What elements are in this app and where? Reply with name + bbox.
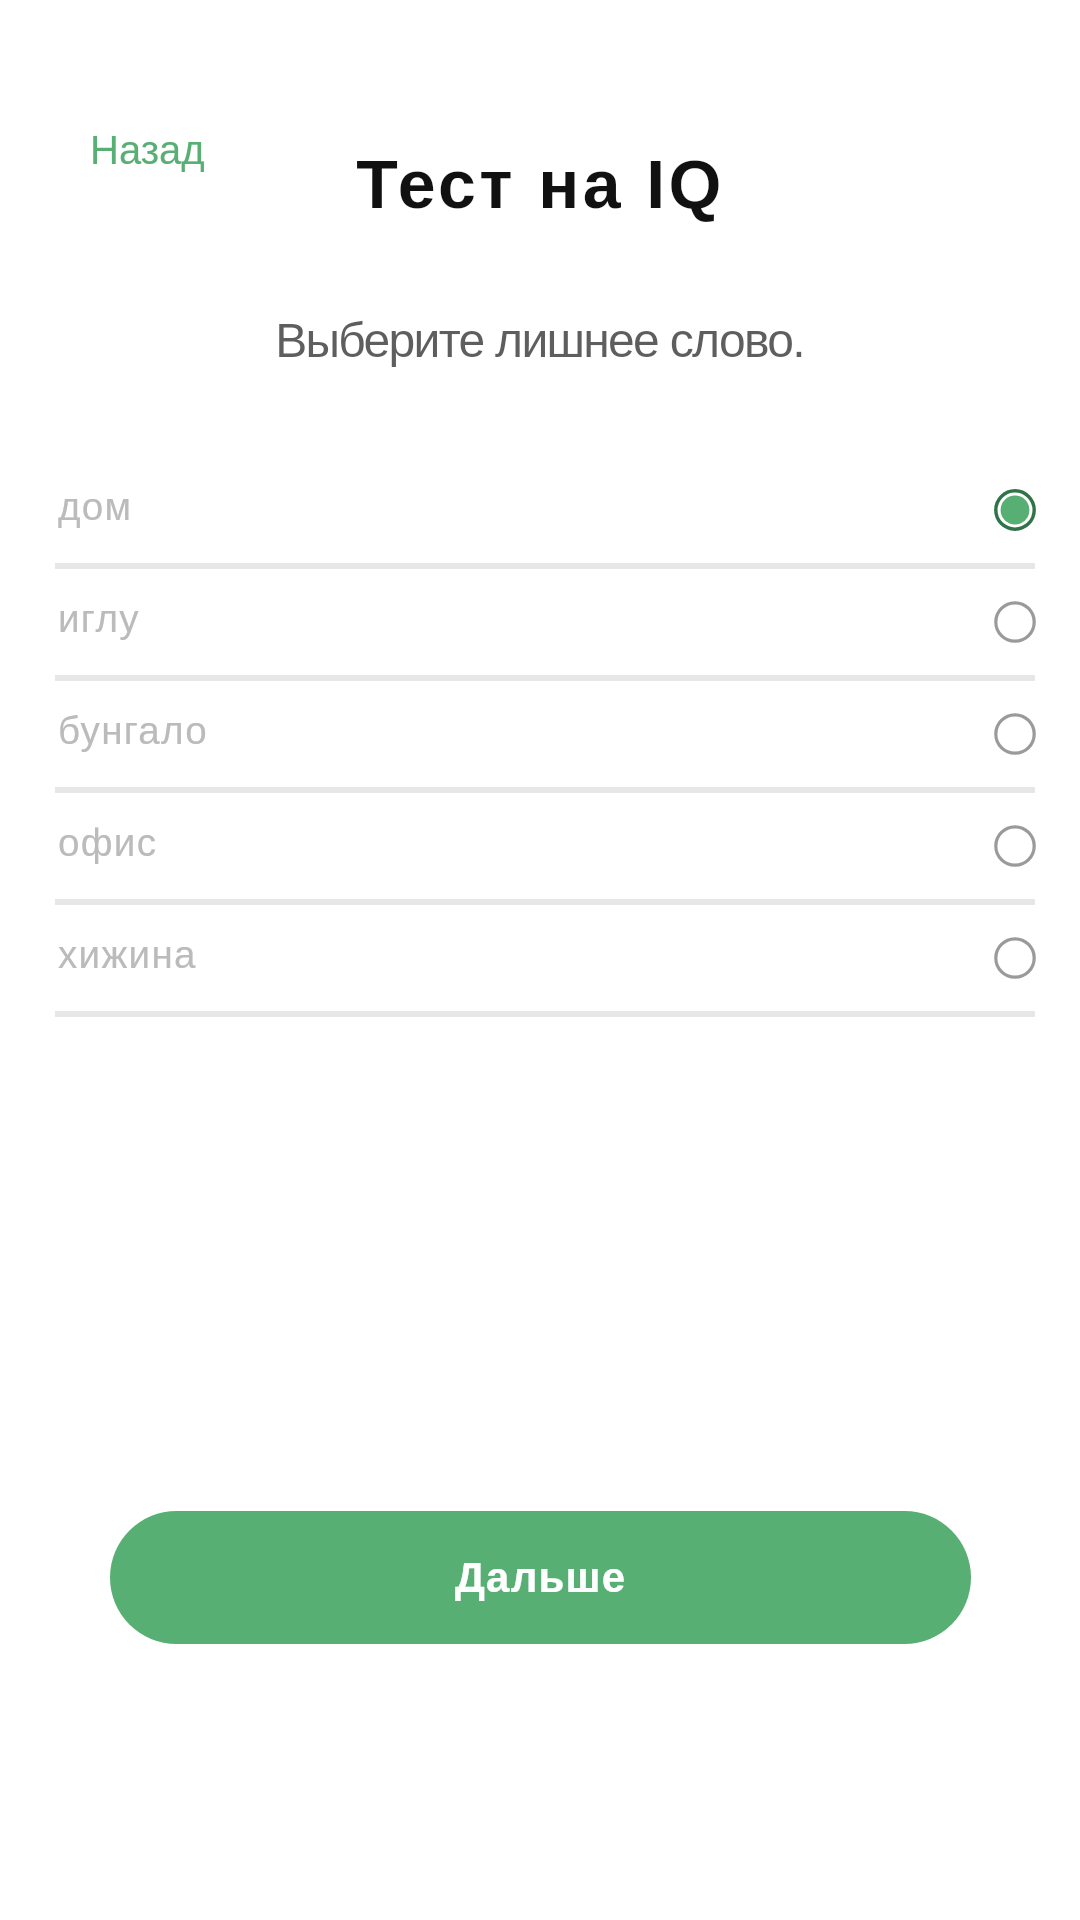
button[interactable]: Назад	[67, 110, 228, 191]
other: Select answer	[985, 704, 1045, 764]
button[interactable]: хижина	[0, 905, 1080, 1017]
button[interactable]: иглу	[0, 569, 1080, 681]
staticText: офис	[58, 821, 158, 864]
button[interactable]: офис	[0, 793, 1080, 905]
button[interactable]: бунгало	[0, 681, 1080, 793]
staticText: Назад	[90, 128, 205, 173]
other: Select answer	[985, 928, 1045, 988]
staticText: Выберите лишнее слово.	[275, 314, 804, 368]
other: Select answer	[985, 816, 1045, 876]
staticText: иглу	[58, 597, 140, 640]
staticText: бунгало	[58, 709, 209, 752]
button[interactable]: Дальше	[110, 1511, 971, 1644]
other: Select answer	[985, 592, 1045, 652]
staticText: хижина	[58, 933, 197, 976]
other: Selected answer	[985, 480, 1045, 540]
staticText: Тест на IQ	[356, 146, 725, 222]
staticText: Дальше	[455, 1554, 627, 1601]
staticText: дом	[58, 485, 133, 528]
button[interactable]: дом	[0, 457, 1080, 569]
